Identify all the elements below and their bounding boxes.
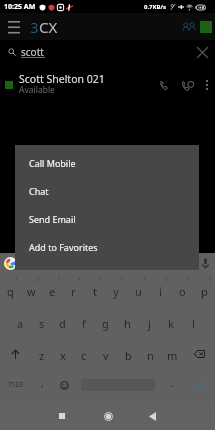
- button[interactable]: h: [116, 306, 138, 338]
- button[interactable]: Chat: [15, 177, 199, 205]
- staticText: CX: [39, 17, 58, 37]
- button[interactable]: n: [139, 338, 161, 370]
- button[interactable]: ?123: [0, 370, 31, 402]
- button[interactable]: Enter: [183, 370, 215, 402]
- staticText: .: [171, 376, 174, 390]
- button[interactable]: m: [161, 338, 183, 370]
- button[interactable]: l: [182, 306, 204, 338]
- staticText: h: [124, 316, 131, 331]
- staticText: ?123: [8, 380, 24, 390]
- button[interactable]: v: [95, 338, 117, 370]
- button[interactable]: Shift: [0, 338, 31, 370]
- staticText: v: [103, 348, 109, 363]
- staticText: scott: [21, 45, 44, 59]
- staticText: 2: [36, 276, 39, 283]
- button[interactable]: More options: [200, 74, 214, 96]
- button[interactable]: Clear search: [191, 41, 213, 63]
- staticText: 10:25 AM: [4, 2, 36, 12]
- button[interactable]: Conference: [180, 18, 198, 36]
- staticText: Send Email: [29, 213, 76, 225]
- staticText: n: [147, 348, 154, 363]
- button[interactable]: d: [52, 306, 73, 338]
- staticText: x: [60, 348, 66, 363]
- staticText: Chat: [29, 185, 49, 197]
- staticText: c: [81, 348, 87, 363]
- staticText: 4: [78, 276, 81, 283]
- staticText: f: [82, 316, 86, 331]
- staticText: 0.7KB/s: [144, 3, 167, 11]
- staticText: Call Mobile: [29, 157, 76, 169]
- staticText: j: [148, 316, 151, 331]
- staticText: 5: [99, 276, 102, 283]
- button[interactable]: Voice input: [202, 258, 209, 269]
- staticText: 1: [15, 276, 18, 283]
- button[interactable]: Call Mobile: [15, 149, 199, 177]
- staticText: 8: [165, 276, 168, 283]
- staticText: g: [102, 316, 109, 331]
- button[interactable]: Scott Shelton 021: [0, 64, 215, 106]
- button[interactable]: Recent apps: [51, 405, 73, 427]
- button[interactable]: o: [171, 274, 193, 306]
- button[interactable]: Add to Favorites: [15, 233, 199, 261]
- staticText: o: [179, 284, 186, 299]
- staticText: e: [49, 284, 56, 299]
- button[interactable]: c: [73, 338, 95, 370]
- button[interactable]: g: [94, 306, 116, 338]
- staticText: Add to Favorites: [29, 241, 98, 253]
- staticText: r: [71, 284, 76, 299]
- staticText: d: [59, 316, 66, 331]
- staticText: t: [93, 284, 97, 299]
- button[interactable]: y: [105, 274, 127, 306]
- staticText: 3: [57, 276, 60, 283]
- staticText: 0: [209, 276, 212, 283]
- staticText: 6: [121, 276, 124, 283]
- button[interactable]: Backspace: [183, 338, 215, 370]
- button[interactable]: x: [52, 338, 73, 370]
- button[interactable]: p: [193, 274, 215, 306]
- button[interactable]: w: [21, 274, 42, 306]
- staticText: 7: [143, 276, 146, 283]
- staticText: p: [201, 284, 208, 299]
- button[interactable]: r: [63, 274, 84, 306]
- button[interactable]: Send Email: [15, 205, 199, 233]
- staticText: y: [113, 284, 119, 299]
- button[interactable]: j: [138, 306, 160, 338]
- button[interactable]: k: [160, 306, 182, 338]
- button[interactable]: q: [0, 274, 21, 306]
- button[interactable]: Video call: [176, 73, 200, 97]
- staticText: b: [125, 348, 132, 363]
- staticText: 9: [187, 276, 190, 283]
- button[interactable]: i: [149, 274, 171, 306]
- staticText: Scott Shelton 021: [19, 72, 105, 86]
- staticText: k: [168, 316, 174, 331]
- staticText: l: [192, 316, 195, 331]
- button[interactable]: u: [127, 274, 149, 306]
- button[interactable]: Home: [97, 405, 119, 427]
- staticText: z: [39, 348, 45, 363]
- button[interactable]: a: [10, 306, 31, 338]
- staticText: m: [167, 348, 178, 363]
- staticText: u: [135, 284, 142, 299]
- button[interactable]: f: [73, 306, 94, 338]
- button[interactable]: Back: [141, 405, 163, 427]
- staticText: s: [39, 316, 45, 331]
- button[interactable]: s: [31, 306, 52, 338]
- staticText: 3: [30, 17, 39, 37]
- button[interactable]: Open navigation drawer: [4, 17, 23, 36]
- staticText: Available: [19, 84, 55, 96]
- button[interactable]: t: [84, 274, 105, 306]
- button[interactable]: Emoji: [53, 370, 75, 402]
- staticText: i: [159, 284, 162, 299]
- button[interactable]: Call: [154, 74, 176, 96]
- button[interactable]: Google search: [3, 256, 18, 271]
- staticText: q: [7, 284, 14, 299]
- button[interactable]: z: [31, 338, 52, 370]
- staticText: ,: [41, 376, 44, 390]
- button[interactable]: e: [42, 274, 63, 306]
- button[interactable]: b: [117, 338, 139, 370]
- staticText: w: [27, 284, 36, 299]
